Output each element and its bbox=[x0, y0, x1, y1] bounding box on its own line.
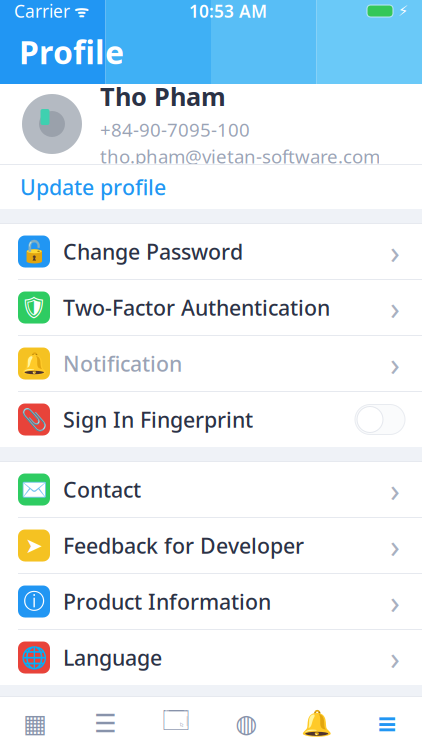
staticText: ☰ bbox=[94, 709, 117, 738]
staticText: › bbox=[390, 580, 400, 623]
button[interactable]: 🔓 bbox=[0, 224, 422, 279]
button[interactable]: 🌐 bbox=[0, 630, 422, 685]
staticText: ≡ bbox=[376, 709, 397, 738]
button[interactable]: 🛡 bbox=[0, 280, 422, 335]
staticText: › bbox=[390, 524, 400, 567]
staticText: › bbox=[390, 342, 400, 385]
button[interactable]: Menu bbox=[352, 697, 422, 750]
button[interactable]: ✉️ bbox=[0, 462, 422, 517]
button[interactable]: Web bbox=[211, 697, 281, 750]
staticText: 🗔 bbox=[162, 702, 189, 744]
staticText: 10:53 AM bbox=[189, 0, 267, 22]
button[interactable]: 🔔 bbox=[0, 336, 422, 391]
staticText: Product Information bbox=[63, 587, 271, 616]
button[interactable]: Dashboard bbox=[0, 697, 70, 750]
staticText: Notification bbox=[63, 349, 182, 378]
staticText: ✉️ bbox=[20, 477, 47, 502]
staticText: ◍ bbox=[235, 709, 257, 738]
staticText: 🔔 bbox=[300, 709, 332, 738]
staticText: 📎 bbox=[20, 407, 47, 432]
staticText: ᯤ bbox=[70, 0, 89, 22]
staticText: +84-90-7095-100 bbox=[100, 117, 250, 142]
staticText: Tho Pham bbox=[100, 79, 226, 113]
staticText: Two-Factor Authentication bbox=[63, 293, 330, 322]
staticText: Carrier bbox=[14, 0, 70, 22]
staticText: 🔓 bbox=[20, 239, 47, 264]
button[interactable]: 📎 bbox=[0, 392, 422, 447]
staticText: › bbox=[390, 230, 400, 273]
button[interactable]: Notifications bbox=[281, 697, 352, 750]
staticText: 🛡 bbox=[20, 295, 47, 320]
staticText: ➤ bbox=[25, 533, 43, 558]
staticText: Language bbox=[63, 643, 162, 672]
button[interactable]: Browser bbox=[141, 697, 211, 750]
staticText: › bbox=[390, 636, 400, 679]
staticText: Update profile bbox=[20, 173, 166, 201]
button[interactable]: Tho Pham bbox=[0, 84, 422, 164]
staticText: 🔔 bbox=[20, 351, 47, 376]
button[interactable]: ➤ bbox=[0, 518, 422, 573]
staticText: › bbox=[390, 468, 400, 511]
button[interactable]: ⓘ bbox=[0, 574, 422, 629]
staticText: › bbox=[390, 286, 400, 329]
staticText: 🌐 bbox=[20, 645, 47, 670]
button[interactable]: List bbox=[70, 697, 141, 750]
staticText: Sign In Fingerprint bbox=[63, 405, 253, 434]
staticText: tho.pham@vietan-software.com bbox=[100, 144, 380, 169]
staticText: ▦ bbox=[23, 709, 47, 738]
staticText: Profile bbox=[19, 30, 124, 73]
staticText: ⚡︎ bbox=[393, 3, 408, 19]
staticText: ⓘ bbox=[23, 588, 44, 615]
staticText: Contact bbox=[63, 475, 141, 504]
button[interactable]: Update profile bbox=[0, 165, 422, 209]
staticText: Change Password bbox=[63, 237, 243, 266]
staticText: Feedback for Developer bbox=[63, 531, 304, 560]
